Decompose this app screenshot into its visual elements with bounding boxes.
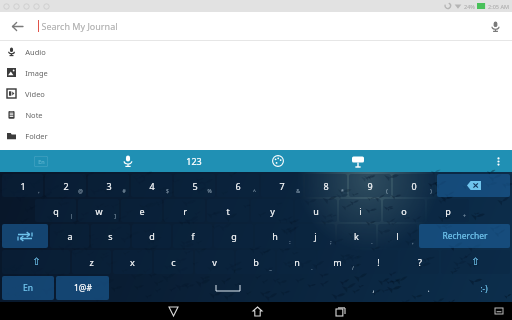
button[interactable]: Search My Journal <box>41 12 291 40</box>
button[interactable]: 2 <box>45 174 86 197</box>
button[interactable]: i <box>339 199 381 222</box>
button[interactable]: 6 <box>217 174 259 197</box>
staticText: $ <box>166 188 169 195</box>
button[interactable]: 8 <box>305 174 347 197</box>
staticText: r <box>183 205 187 217</box>
button[interactable]: b <box>236 250 275 274</box>
staticText: 9 <box>367 180 373 192</box>
button[interactable]: Recents <box>331 302 349 320</box>
button[interactable]: Back <box>6 15 28 37</box>
staticText: m <box>333 256 342 268</box>
staticText: , <box>372 283 375 294</box>
staticText: / <box>352 265 354 272</box>
button[interactable]: o <box>383 199 425 222</box>
staticText: i <box>359 205 362 217</box>
button[interactable]: More options <box>490 153 506 169</box>
button[interactable]: v <box>195 250 234 274</box>
button[interactable]: s <box>91 224 130 248</box>
button[interactable]: 5 <box>174 174 215 197</box>
staticText: % <box>207 188 212 195</box>
button[interactable]: Theme <box>269 152 287 170</box>
button[interactable]: Note <box>0 104 512 125</box>
button[interactable]: 7 <box>261 174 303 197</box>
button[interactable]: 9 <box>349 174 391 197</box>
button[interactable]: 0 <box>393 174 435 197</box>
button[interactable]: Hide keyboard <box>492 304 506 318</box>
button[interactable]: h <box>255 224 294 248</box>
button[interactable]: z <box>72 250 111 274</box>
button[interactable]: Voice search <box>484 15 506 37</box>
button[interactable]: , <box>347 276 400 300</box>
button[interactable]: d <box>132 224 171 248</box>
button[interactable]: 3 <box>88 174 129 197</box>
button[interactable]: u <box>295 199 337 222</box>
button[interactable]: . <box>402 276 455 300</box>
button[interactable]: Space <box>111 276 345 300</box>
button[interactable]: y <box>251 199 293 222</box>
button[interactable]: Keyboard settings <box>349 152 367 170</box>
button[interactable]: Voice input <box>119 152 137 170</box>
staticText: ( <box>386 188 388 195</box>
staticText: . <box>311 265 313 272</box>
button[interactable]: e <box>121 199 162 222</box>
staticText: o <box>401 205 407 217</box>
staticText: & <box>296 188 300 195</box>
button[interactable]: q <box>35 199 76 222</box>
button[interactable]: x <box>113 250 152 274</box>
button[interactable]: Tab <box>2 224 48 248</box>
button[interactable]: 123 <box>181 152 207 170</box>
button[interactable]: Back <box>164 302 182 320</box>
staticText: x <box>130 256 135 268</box>
staticText: ] <box>114 213 116 220</box>
staticText: 3 <box>106 180 112 192</box>
staticText: Note <box>25 110 43 120</box>
staticText: 7 <box>279 180 285 192</box>
button[interactable]: Video <box>0 83 512 104</box>
button[interactable]: Backspace <box>437 174 510 197</box>
button[interactable]: g <box>214 224 253 248</box>
staticText: : <box>289 239 291 246</box>
staticText: Search My Journal <box>41 20 118 32</box>
button[interactable]: 4 <box>131 174 172 197</box>
button[interactable]: Emoji <box>457 276 510 300</box>
button[interactable]: c <box>154 250 193 274</box>
staticText: g <box>231 230 237 242</box>
button[interactable]: f <box>173 224 212 248</box>
button[interactable]: Folder <box>0 125 512 146</box>
staticText: e <box>139 205 145 217</box>
button[interactable]: r <box>164 199 205 222</box>
button[interactable]: m <box>318 250 357 274</box>
staticText: Video <box>25 89 45 99</box>
button[interactable]: Shift <box>2 250 70 274</box>
button[interactable]: a <box>50 224 89 248</box>
button[interactable]: l <box>378 224 417 248</box>
button[interactable]: 1 <box>2 174 43 197</box>
staticText: 24% <box>464 3 475 10</box>
button[interactable]: 1@# <box>56 276 109 300</box>
staticText: ; <box>330 239 332 246</box>
button[interactable]: Home <box>248 302 266 320</box>
button[interactable]: j <box>296 224 335 248</box>
button[interactable]: En <box>2 276 54 300</box>
staticText: n <box>294 256 300 268</box>
staticText: , <box>412 239 414 246</box>
button[interactable]: Shift <box>441 250 510 274</box>
button[interactable]: n <box>277 250 316 274</box>
staticText: @ <box>78 188 83 195</box>
staticText: h <box>272 230 278 242</box>
button[interactable]: w <box>78 199 119 222</box>
button[interactable]: p <box>427 199 469 222</box>
button[interactable]: Audio <box>0 41 512 62</box>
staticText: 8 <box>323 180 329 192</box>
staticText: v <box>212 256 217 268</box>
button[interactable]: k <box>337 224 376 248</box>
button[interactable]: En <box>34 156 48 167</box>
button[interactable]: t <box>207 199 249 222</box>
staticText: q <box>53 205 59 217</box>
staticText: a <box>67 230 73 242</box>
button[interactable]: ! <box>359 250 398 274</box>
staticText: y <box>270 205 275 217</box>
button[interactable]: ? <box>400 250 439 274</box>
button[interactable]: Image <box>0 62 512 83</box>
button[interactable]: Rechercher <box>419 224 510 248</box>
